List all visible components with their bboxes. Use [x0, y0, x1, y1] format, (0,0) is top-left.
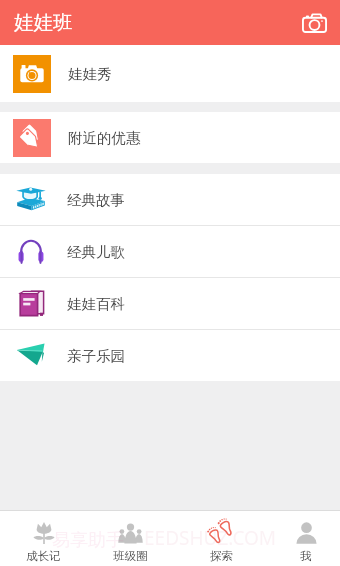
button[interactable]: 成长记 — [13, 511, 73, 566]
button[interactable]: 娃娃秀 — [0, 45, 340, 102]
staticText: 经典故事 — [67, 191, 125, 209]
staticText: 经典儿歌 — [67, 243, 125, 261]
staticText: 附近的优惠 — [68, 129, 141, 147]
button[interactable]: 经典儿歌 — [0, 226, 340, 277]
staticText: 班级圈 — [113, 549, 148, 563]
staticText: EEDSHUZ.COM — [144, 525, 277, 551]
button[interactable]: 探索 — [191, 511, 251, 566]
staticText: 娃娃班 — [14, 10, 73, 35]
staticText: 娃娃百科 — [67, 295, 125, 313]
button[interactable]: 附近的优惠 — [0, 112, 340, 163]
button[interactable]: 亲子乐园 — [0, 330, 340, 381]
staticText: 我 — [300, 549, 312, 563]
staticText: 易享助手 — [52, 529, 124, 552]
button[interactable]: Camera — [295, 4, 333, 42]
staticText: 亲子乐园 — [67, 347, 125, 365]
button[interactable]: 班级圈 — [100, 511, 160, 566]
button[interactable]: 我 — [276, 511, 336, 566]
button[interactable]: 娃娃百科 — [0, 278, 340, 329]
button[interactable]: 经典故事 — [0, 174, 340, 225]
staticText: 娃娃秀 — [68, 65, 112, 83]
staticText: 成长记 — [26, 549, 61, 563]
staticText: 探索 — [210, 549, 233, 563]
